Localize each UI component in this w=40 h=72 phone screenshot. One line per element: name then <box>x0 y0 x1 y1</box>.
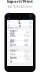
staticText: Portrait <box>24 34 30 41</box>
button[interactable]: Done <box>29 14 32 28</box>
staticText: Export/Print <box>7 0 33 4</box>
staticText: Cancel <box>7 12 10 30</box>
button[interactable]: Resolution <box>9 52 31 57</box>
button[interactable]: Cancel <box>7 12 10 30</box>
staticText: Normal <box>24 40 30 47</box>
staticText: Orientation <box>10 31 16 45</box>
staticText: Paper Size <box>10 29 18 36</box>
staticText: IMAGE <box>10 48 18 51</box>
staticText: A4 <box>26 31 30 34</box>
staticText: PDF <box>25 58 30 61</box>
staticText: PAPER <box>10 26 18 30</box>
button[interactable]: Format <box>9 57 31 62</box>
staticText: Size & Resolution <box>7 5 32 8</box>
staticText: Resolution <box>10 49 16 59</box>
button[interactable]: Orientation <box>9 35 31 40</box>
staticText: Margins <box>10 40 16 47</box>
staticText: Export <box>18 14 21 28</box>
button[interactable]: Paper Size <box>9 30 31 35</box>
button[interactable]: Margins <box>9 41 31 46</box>
staticText: 300 dpi <box>24 51 30 58</box>
staticText: Done <box>29 14 32 28</box>
staticText: Format <box>10 56 17 63</box>
